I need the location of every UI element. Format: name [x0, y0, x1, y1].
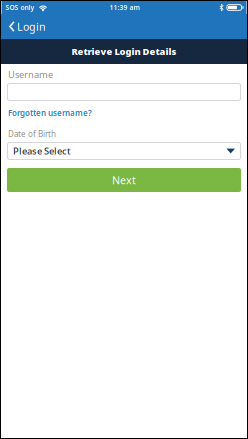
staticText: 11:39 am — [109, 3, 139, 12]
button[interactable]: Next — [7, 168, 241, 192]
staticText: Please Select — [13, 145, 71, 157]
button[interactable]: Forgotten username? — [7, 108, 241, 118]
staticText: Retrieve Login Details — [71, 45, 176, 58]
button[interactable]: Login — [1, 14, 54, 39]
staticText: Login — [17, 19, 46, 34]
staticText: SOS only — [5, 3, 34, 12]
button[interactable]: Please Select — [7, 142, 241, 160]
staticText: Username — [8, 68, 53, 81]
staticText: Date of Birth — [8, 129, 56, 139]
staticText: Next — [112, 173, 136, 187]
staticText: Forgotten username? — [8, 108, 92, 118]
